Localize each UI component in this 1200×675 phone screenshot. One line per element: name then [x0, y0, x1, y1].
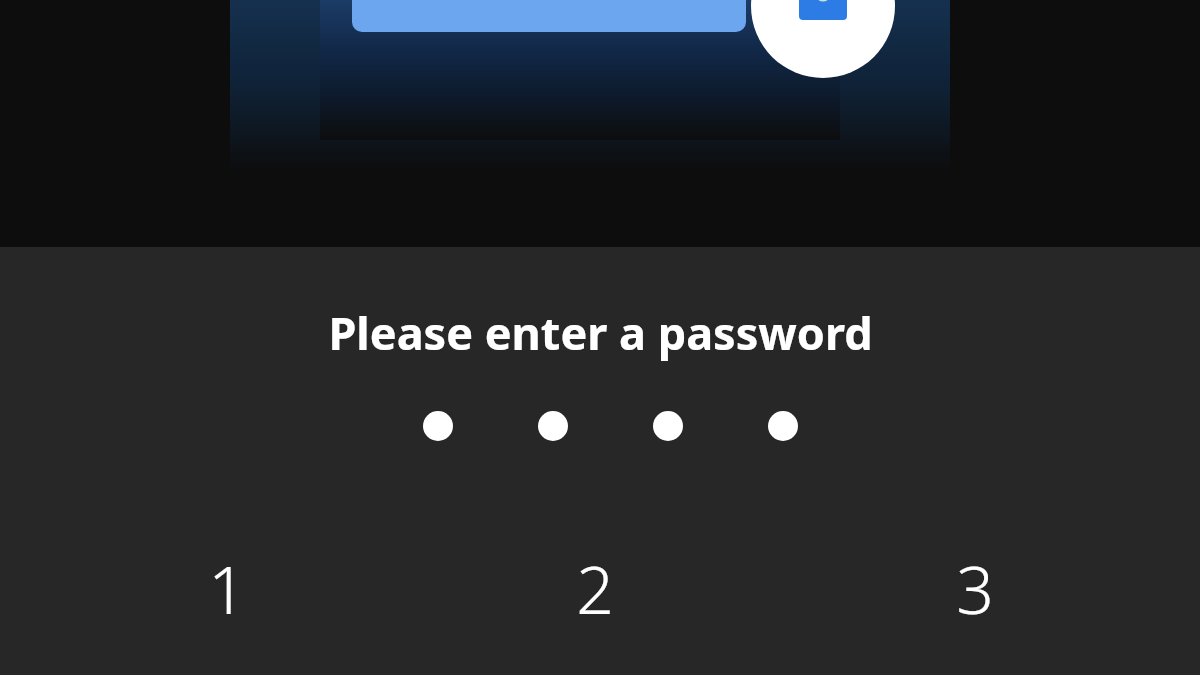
button[interactable]: 3 — [885, 543, 1065, 663]
staticText: 3 — [956, 543, 994, 633]
button[interactable]: 1 — [137, 543, 317, 663]
button[interactable] — [352, 0, 746, 32]
staticText: 2 — [576, 543, 614, 633]
staticText: 1 — [208, 543, 246, 633]
button[interactable]: App shortcut — [751, 0, 895, 78]
staticText: Please enter a password — [328, 302, 873, 363]
button[interactable]: 2 — [505, 543, 685, 663]
